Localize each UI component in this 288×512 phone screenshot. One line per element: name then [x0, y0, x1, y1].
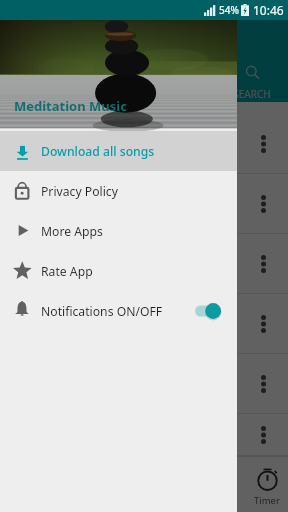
staticText: Notifications ON/OFF [41, 303, 163, 320]
button[interactable]: More options [0, 234, 288, 294]
button[interactable]: Privacy Policy [0, 171, 237, 211]
button[interactable]: More options [0, 354, 288, 414]
button[interactable]: Timer [246, 456, 288, 512]
staticText: SEARCH [233, 87, 271, 101]
button[interactable]: SONGS [162, 20, 222, 102]
button[interactable]: More options [0, 114, 288, 174]
button[interactable]: Sleep [164, 456, 246, 512]
button[interactable]: Notifications on off [195, 299, 221, 323]
button[interactable]: More options [246, 247, 280, 281]
button[interactable]: More options [0, 174, 288, 234]
staticText: Rate App [41, 263, 93, 280]
button[interactable]: Notifications ON/OFF [0, 291, 237, 331]
button[interactable]: More options [246, 187, 280, 221]
staticText: SONGS [175, 87, 209, 101]
button[interactable]: LIBRARY [102, 20, 162, 102]
button[interactable]: More options [246, 307, 280, 341]
staticText: Privacy Policy [41, 183, 118, 200]
staticText: Download all songs [41, 143, 155, 160]
button[interactable]: More options [246, 127, 280, 161]
button[interactable]: More options [0, 414, 288, 456]
button[interactable]: Download all songs [0, 131, 237, 171]
staticText: Meditation Music [14, 97, 127, 115]
button[interactable]: More options [0, 294, 288, 354]
staticText: 54% [219, 3, 239, 17]
staticText: Timer [254, 494, 280, 507]
button[interactable]: Rate App [0, 251, 237, 291]
button[interactable]: SEARCH [222, 20, 282, 102]
button[interactable]: More options [246, 367, 280, 401]
staticText: More Apps [41, 223, 103, 240]
button[interactable]: More options [246, 418, 280, 452]
button[interactable]: More Apps [0, 211, 237, 251]
staticText: 10:46 [253, 2, 284, 18]
